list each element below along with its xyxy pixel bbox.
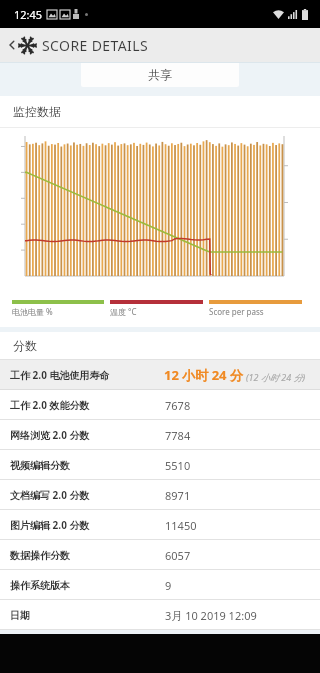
button[interactable]: 数据操作分数 xyxy=(0,540,320,570)
staticText: 分数 xyxy=(13,338,37,353)
staticText: 日期 xyxy=(10,609,30,622)
staticText: 视频编辑分数 xyxy=(10,459,70,472)
staticText: 监控数据 xyxy=(13,104,61,119)
button[interactable]: 操作系统版本 xyxy=(0,570,320,600)
staticText: 工作 2.0 电池使用寿命 xyxy=(10,368,110,382)
staticText: 11450 xyxy=(165,518,197,533)
staticText: 共享 xyxy=(148,67,172,82)
staticText: 网络浏览 2.0 分数 xyxy=(10,428,90,442)
button[interactable]: 共享 xyxy=(81,62,239,87)
staticText: (12 小时 24 分) xyxy=(246,371,306,383)
staticText: 数据操作分数 xyxy=(10,549,70,562)
staticText: 6057 xyxy=(165,548,191,563)
staticText: Score per pass xyxy=(209,306,264,317)
staticText: 电池电量 % xyxy=(12,306,53,317)
staticText: 3月 10 2019 12:09 xyxy=(165,608,257,623)
button[interactable]: Back xyxy=(0,28,320,62)
staticText: 温度 °C xyxy=(110,306,137,317)
staticText: 8971 xyxy=(165,488,191,503)
staticText: 操作系统版本 xyxy=(10,579,70,592)
button[interactable]: 工作 2.0 效能分数 xyxy=(0,390,320,420)
button[interactable]: 图片编辑 2.0 分数 xyxy=(0,510,320,540)
staticText: 图片编辑 2.0 分数 xyxy=(10,518,90,532)
staticText: 5510 xyxy=(165,458,191,473)
staticText: 12:45 xyxy=(14,7,43,22)
staticText: SCORE DETAILS xyxy=(42,36,149,55)
button[interactable]: 网络浏览 2.0 分数 xyxy=(0,420,320,450)
button[interactable]: 工作 2.0 电池使用寿命 xyxy=(0,360,320,390)
button[interactable]: 视频编辑分数 xyxy=(0,450,320,480)
staticText: 9 xyxy=(165,578,172,593)
other: Back xyxy=(6,39,18,51)
staticText: 7784 xyxy=(165,428,191,443)
staticText: 7678 xyxy=(165,398,191,413)
staticText: 12 小时 24 分 xyxy=(164,366,243,384)
button[interactable]: 日期 xyxy=(0,600,320,630)
button[interactable]: 文档编写 2.0 分数 xyxy=(0,480,320,510)
staticText: 文档编写 2.0 分数 xyxy=(10,488,90,502)
staticText: 工作 2.0 效能分数 xyxy=(10,398,90,412)
